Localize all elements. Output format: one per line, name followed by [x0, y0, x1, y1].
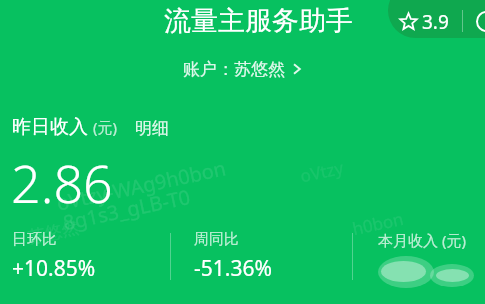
button[interactable]: 本月收入 (元) [378, 230, 485, 294]
staticText: 日环比 [12, 230, 57, 249]
staticText: -51.36% [194, 254, 272, 283]
staticText: 周同比 [194, 230, 239, 249]
staticText: h0bon [350, 207, 406, 240]
button[interactable]: 流量主服务助手 [100, 1, 416, 41]
button[interactable]: 明细 [135, 118, 169, 139]
staticText: 流量主服务助手 [164, 4, 353, 38]
staticText: +10.85% [12, 254, 96, 283]
staticText: oVtzy [298, 156, 346, 187]
staticText: 苏悠然 [26, 217, 81, 248]
staticText: (元) [93, 117, 118, 137]
staticText: 账户：苏悠然 [183, 59, 285, 80]
staticText: oVtzy-WAg9h0bon [54, 154, 229, 217]
staticText: 8g1s3_gLB-T0 [61, 183, 193, 236]
button[interactable]: 账户：苏悠然 [183, 56, 302, 82]
button[interactable]: 评分 3.9，更多 [388, 0, 485, 38]
staticText: 昨日收入 [12, 115, 88, 139]
button[interactable]: 日环比 [12, 230, 162, 283]
staticText: 2.86 [11, 147, 113, 218]
staticText: 明细 [135, 118, 169, 139]
button[interactable]: 周同比 [194, 230, 344, 283]
staticText: 3.9 [422, 9, 449, 33]
staticText: 本月收入 (元) [378, 230, 466, 250]
